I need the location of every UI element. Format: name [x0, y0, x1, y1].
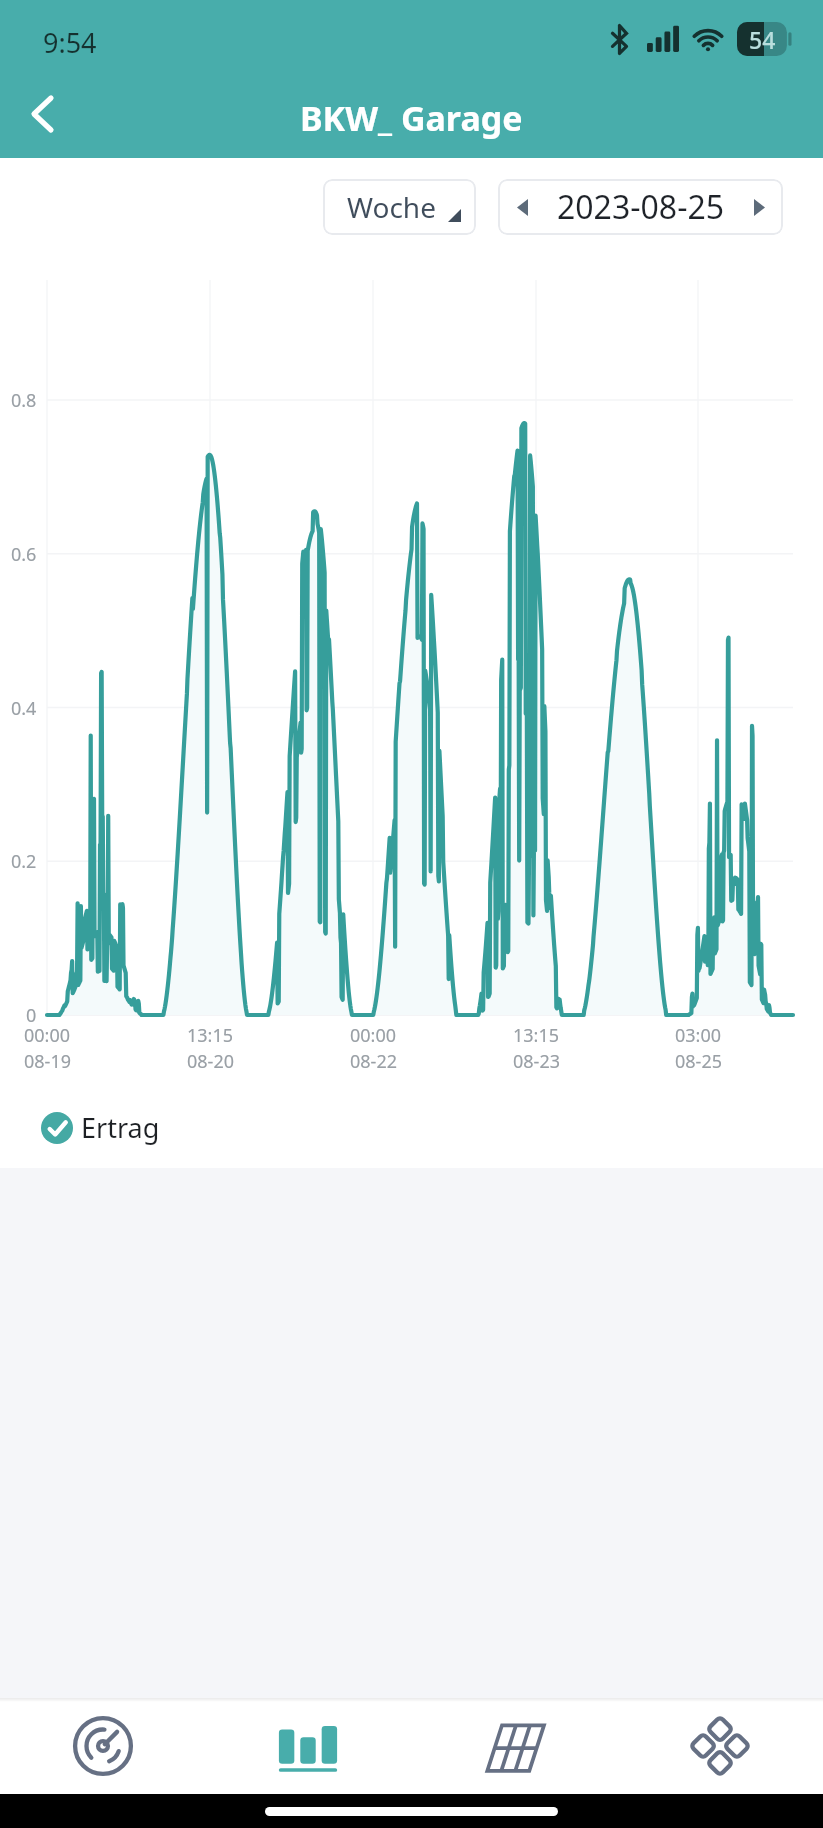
staticText: 0.8 — [11, 388, 37, 413]
staticText: 54 — [749, 24, 776, 55]
button[interactable]: Statistics — [205, 1698, 411, 1794]
staticText: 03:00 — [675, 1023, 722, 1048]
staticText: 0.4 — [11, 696, 37, 721]
staticText: 13:15 — [187, 1023, 234, 1048]
staticText: 0.6 — [11, 542, 37, 567]
button[interactable]: Back — [0, 78, 80, 158]
button[interactable]: Ertrag — [41, 1109, 160, 1146]
staticText: Ertrag — [81, 1109, 160, 1146]
staticText: 9:54 — [43, 24, 97, 61]
button[interactable]: 2023-08-25 — [546, 179, 735, 235]
button[interactable]: Solar panels — [411, 1698, 617, 1794]
staticText: 00:00 — [350, 1023, 397, 1048]
staticText: 08-20 — [187, 1049, 234, 1074]
staticText: 0 — [26, 1003, 37, 1028]
button[interactable]: Next period — [735, 179, 783, 235]
staticText: 08-23 — [513, 1049, 560, 1074]
staticText: 08-19 — [24, 1049, 71, 1074]
button[interactable]: Dashboard — [0, 1698, 205, 1794]
staticText: BKW_ Garage — [300, 95, 523, 141]
button[interactable]: Previous period — [498, 179, 546, 235]
staticText: 2023-08-25 — [557, 185, 725, 229]
staticText: 0.2 — [11, 849, 37, 874]
staticText: 13:15 — [513, 1023, 560, 1048]
staticText: 00:00 — [24, 1023, 71, 1048]
button[interactable]: More — [617, 1698, 823, 1794]
button[interactable]: Woche — [323, 179, 476, 235]
staticText: 08-25 — [675, 1049, 722, 1074]
staticText: 08-22 — [350, 1049, 397, 1074]
staticText: Woche — [347, 188, 436, 226]
